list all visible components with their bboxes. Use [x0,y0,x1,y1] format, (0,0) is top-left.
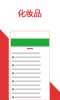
staticText: 化妆品 [17,9,41,18]
